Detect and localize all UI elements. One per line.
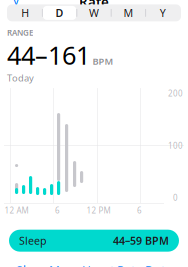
staticText: 6 (55, 205, 60, 216)
staticText: 6 (137, 205, 142, 216)
button[interactable]: Y (146, 6, 179, 20)
button[interactable]: M (112, 6, 145, 20)
staticText: 12 PM (86, 205, 110, 216)
staticText: Summary (13, 0, 65, 8)
staticText: 0 (173, 192, 178, 203)
staticText: 12 AM (4, 205, 28, 216)
staticText: 100 (168, 140, 183, 151)
button[interactable]: Sleep (9, 230, 179, 252)
staticText: W (89, 6, 99, 20)
staticText: Heart Rate (79, 0, 116, 10)
staticText: H (21, 6, 29, 20)
staticText: 44–161 (7, 38, 90, 72)
button[interactable]: W (77, 6, 111, 20)
staticText: 200 (168, 88, 183, 99)
staticText: Show More Heart Rate Data (16, 263, 172, 267)
staticText: 44–59 BPM (113, 234, 169, 248)
staticText: Y (160, 6, 166, 20)
staticText: M (123, 6, 133, 20)
staticText: Sleep (19, 234, 47, 248)
button[interactable]: ‹ (0, 0, 65, 11)
staticText: BPM (92, 55, 113, 67)
staticText: Today (7, 72, 34, 84)
staticText: D (56, 6, 64, 20)
button[interactable]: Show More Heart Rate Data (0, 258, 188, 267)
button[interactable]: D (43, 6, 76, 20)
staticText: RANGE (7, 27, 33, 38)
button[interactable]: H (8, 6, 42, 20)
